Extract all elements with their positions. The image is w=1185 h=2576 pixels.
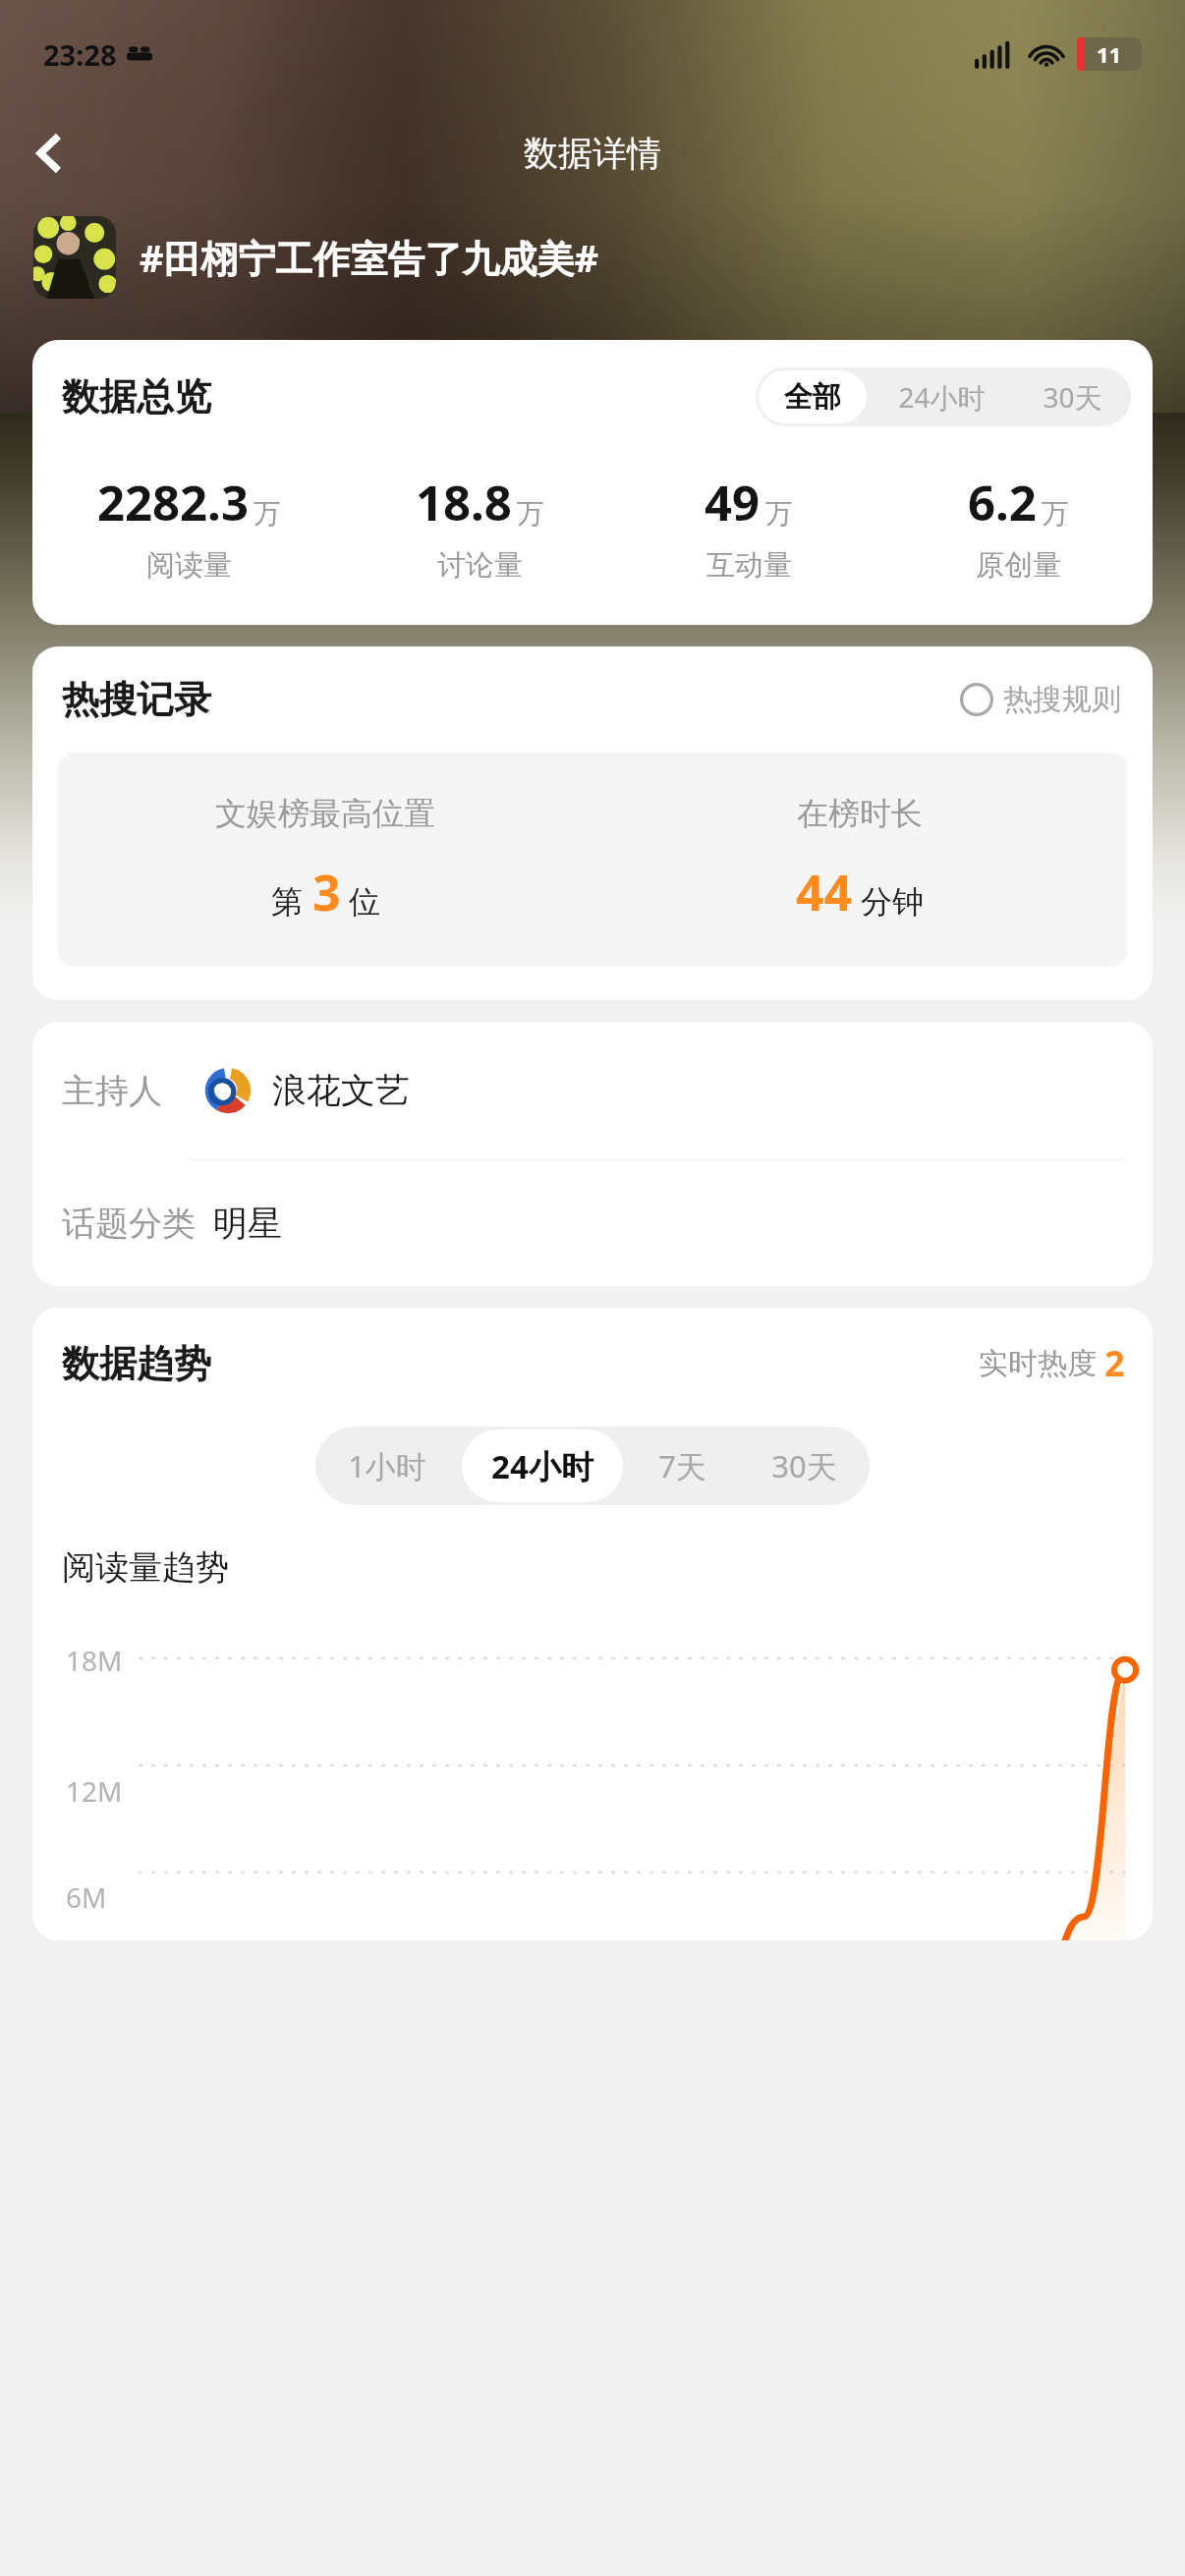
button[interactable]: 全部 [759, 370, 867, 423]
button[interactable]: 30天 [1017, 370, 1128, 423]
staticText: 24小时 [898, 378, 986, 416]
staticText: 讨论量 [437, 547, 523, 584]
button[interactable]: 在榜时长 [592, 753, 1127, 967]
staticText: 18M [66, 1642, 123, 1679]
staticText: 3 [312, 859, 341, 925]
staticText: 24小时 [491, 1444, 593, 1488]
staticText: 12M [66, 1772, 123, 1810]
staticText: 7天 [658, 1445, 706, 1486]
staticText: 1小时 [348, 1445, 426, 1486]
button[interactable]: 话题分类 [32, 1160, 1153, 1286]
staticText: 数据趋势 [62, 1340, 211, 1387]
staticText: 2282.3 [97, 470, 249, 535]
staticText: 热搜记录 [62, 676, 211, 723]
staticText: 阅读量趋势 [62, 1546, 229, 1589]
staticText: 万 [1042, 496, 1069, 531]
staticText: 热搜规则 [1003, 681, 1121, 718]
staticText: 原创量 [976, 547, 1061, 584]
button[interactable]: 热搜规则 [956, 677, 1125, 722]
staticText: 49 [705, 470, 761, 535]
button[interactable]: 文娱榜最高位置 [58, 753, 592, 967]
staticText: 2 [1104, 1339, 1125, 1387]
staticText: 44 [796, 859, 853, 925]
staticText: 数据详情 [524, 132, 661, 175]
staticText: 18.8 [416, 470, 512, 535]
staticText: 主持人 [62, 1070, 162, 1112]
button[interactable]: 7天 [629, 1429, 736, 1502]
staticText: 万 [517, 496, 544, 531]
staticText: 互动量 [706, 547, 792, 584]
staticText: 在榜时长 [797, 794, 923, 833]
button[interactable]: 2282.3 [32, 470, 345, 584]
staticText: 分钟 [861, 882, 924, 922]
button[interactable]: 49 [614, 470, 883, 584]
staticText: 23:28 [43, 35, 117, 74]
button[interactable]: #田栩宁工作室告了九成美# [0, 198, 1185, 316]
staticText: 6M [66, 1878, 107, 1916]
staticText: 全部 [784, 379, 841, 416]
button[interactable]: 6.2 [883, 470, 1153, 584]
staticText: 实时热度 [979, 1345, 1097, 1382]
button[interactable]: 主持人 [32, 1022, 1153, 1159]
staticText: 11 [1097, 39, 1122, 69]
staticText: 万 [765, 496, 793, 531]
staticText: 阅读量 [146, 547, 232, 584]
staticText: 6.2 [968, 470, 1037, 535]
button[interactable]: 1小时 [318, 1429, 456, 1502]
button[interactable]: 24小时 [462, 1429, 623, 1502]
staticText: 万 [254, 496, 281, 531]
button[interactable]: Back [14, 118, 85, 189]
staticText: 明星 [213, 1202, 282, 1245]
button[interactable]: 18.8 [345, 470, 614, 584]
staticText: 位 [349, 882, 380, 922]
staticText: 30天 [1043, 378, 1102, 416]
staticText: 30天 [771, 1445, 837, 1486]
button[interactable]: 24小时 [873, 370, 1011, 423]
staticText: #田栩宁工作室告了九成美# [140, 232, 599, 283]
staticText: 文娱榜最高位置 [215, 794, 435, 833]
staticText: 第 [271, 882, 303, 922]
button[interactable]: 30天 [742, 1429, 867, 1502]
staticText: 浪花文艺 [272, 1069, 410, 1112]
staticText: 话题分类 [62, 1203, 196, 1245]
staticText: 数据总览 [62, 373, 211, 420]
